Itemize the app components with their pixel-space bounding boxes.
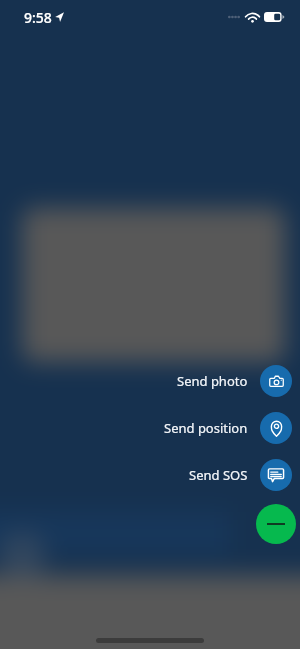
staticText: Send position (164, 419, 248, 437)
staticText: Send SOS (189, 466, 248, 484)
button[interactable]: Send SOS (189, 459, 296, 491)
button[interactable]: Send photo (177, 365, 296, 397)
button[interactable]: Send position (164, 412, 296, 444)
staticText: Send photo (177, 372, 248, 390)
button[interactable]: Close actions menu (256, 504, 296, 544)
staticText: 9:58 (24, 8, 52, 27)
